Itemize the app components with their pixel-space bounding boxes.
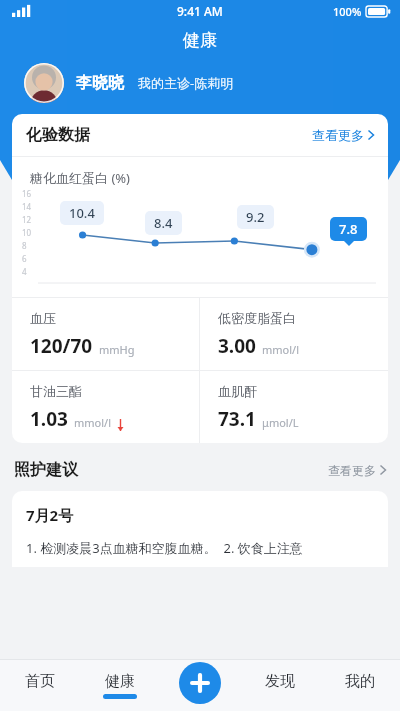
staticText: 9.2 (246, 208, 265, 226)
button[interactable]: 化验数据 (12, 114, 388, 156)
staticText: 120/70 (30, 333, 93, 359)
staticText: 8.4 (154, 214, 173, 232)
staticText: mmHg (99, 342, 135, 357)
button[interactable]: Add (179, 662, 221, 704)
staticText: 9:41 AM (177, 3, 223, 19)
staticText: 照护建议 (14, 460, 78, 480)
staticText: mmol/l (74, 415, 111, 430)
button[interactable]: 首页 (0, 659, 80, 711)
staticText: 健康 (105, 672, 135, 691)
staticText: 14 (22, 201, 32, 212)
staticText: 1.03 (30, 406, 68, 432)
staticText: μmol/L (262, 415, 299, 430)
staticText: 首页 (25, 672, 55, 691)
button[interactable]: 甘油三酯 (12, 371, 199, 443)
staticText: 12 (22, 214, 32, 225)
staticText: 血压 (30, 310, 56, 326)
staticText: 血肌酐 (218, 383, 257, 399)
button[interactable]: 血肌酐 (200, 371, 388, 443)
staticText: mmol/l (262, 342, 299, 357)
staticText: 1. 检测凌晨3点血糖和空腹血糖。 2. 饮食上注意 (26, 539, 303, 557)
staticText: 7月2号 (26, 505, 74, 525)
button[interactable]: 我的 (320, 659, 400, 711)
staticText: 查看更多 (312, 127, 364, 143)
staticText: 我的主诊-陈莉明 (138, 74, 234, 92)
staticText: 李晓晓 (76, 73, 124, 93)
staticText: 发现 (265, 672, 295, 691)
staticText: 4 (22, 266, 27, 277)
staticText: 100% (333, 4, 362, 19)
button[interactable]: 血压 (12, 298, 199, 370)
staticText: 8 (22, 240, 27, 251)
staticText: 16 (22, 188, 32, 199)
staticText: 化验数据 (26, 125, 90, 145)
staticText: 10 (22, 227, 32, 238)
staticText: 健康 (183, 30, 217, 51)
button[interactable]: 发现 (240, 659, 320, 711)
staticText: 10.4 (69, 204, 95, 222)
button[interactable]: 7月2号 (12, 491, 388, 567)
staticText: 我的 (345, 672, 375, 691)
staticText: 查看更多 (328, 463, 376, 478)
staticText: 甘油三酯 (30, 383, 82, 399)
staticText: 7.8 (339, 220, 358, 238)
staticText: 低密度脂蛋白 (218, 310, 296, 326)
button[interactable]: 照护建议 (0, 457, 400, 483)
staticText: 6 (22, 253, 27, 264)
staticText: 73.1 (218, 406, 256, 432)
button[interactable]: 低密度脂蛋白 (200, 298, 388, 370)
button[interactable]: 李晓晓 (0, 58, 400, 108)
button[interactable]: 健康 (80, 659, 160, 711)
staticText: 3.00 (218, 333, 256, 359)
staticText: 糖化血红蛋白 (%) (30, 169, 130, 187)
